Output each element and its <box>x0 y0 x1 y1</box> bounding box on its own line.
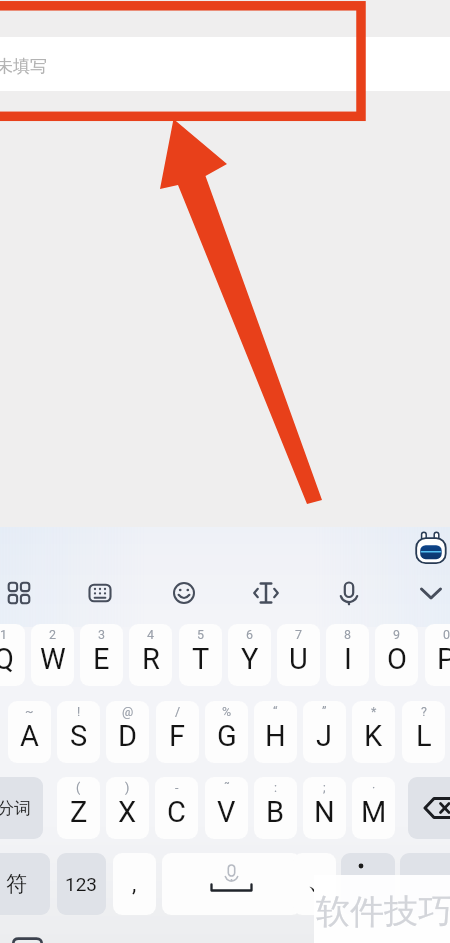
staticText: L <box>416 719 432 753</box>
button[interactable]: 0 <box>425 624 450 686</box>
button[interactable]: Keyboard layout <box>79 572 121 614</box>
button[interactable]: 123 <box>57 853 106 915</box>
button[interactable]: % <box>205 701 248 763</box>
staticText: 2 <box>49 627 57 642</box>
button[interactable]: Voice input <box>328 572 370 614</box>
button[interactable]: 分词 <box>0 777 43 839</box>
button[interactable]: * <box>352 701 395 763</box>
staticText: / <box>175 704 181 719</box>
button[interactable]: 9 <box>375 624 418 686</box>
button[interactable]: 8 <box>326 624 369 686</box>
staticText: 未填写 <box>0 56 47 77</box>
button[interactable]: 未填写 <box>0 37 450 91</box>
button[interactable]: 3 <box>80 624 123 686</box>
button[interactable] <box>162 853 301 915</box>
button[interactable]: Emoji <box>163 572 205 614</box>
staticText: 3 <box>98 627 106 642</box>
button[interactable]: 2 <box>31 624 74 686</box>
button[interactable]: More <box>12 937 43 943</box>
staticText: ~ <box>25 704 34 719</box>
button[interactable]: · <box>352 777 395 839</box>
button[interactable]: ~ <box>8 701 51 763</box>
staticText: ˜ <box>224 780 230 795</box>
staticText: A <box>20 719 39 753</box>
button[interactable]: 5 <box>179 624 222 686</box>
staticText: @ <box>122 704 134 719</box>
staticText: D <box>118 719 138 753</box>
button[interactable]: : <box>254 777 297 839</box>
staticText: O <box>387 642 407 676</box>
staticText: J <box>316 719 333 753</box>
staticText: “ <box>273 704 278 719</box>
staticText: % <box>222 704 232 719</box>
staticText: N <box>314 795 335 829</box>
staticText: ; <box>323 780 326 795</box>
button[interactable]: @ <box>106 701 149 763</box>
staticText: E <box>93 642 110 676</box>
button[interactable]: AI assistant <box>414 530 448 566</box>
staticText: H <box>265 719 286 753</box>
staticText: 软件技巧 <box>316 890 450 933</box>
button[interactable]: 1 <box>0 624 25 686</box>
staticText: 5 <box>197 627 205 642</box>
staticText: F <box>169 719 186 753</box>
button[interactable]: - <box>155 777 198 839</box>
button[interactable]: Apps <box>0 572 40 614</box>
staticText: 9 <box>393 627 401 642</box>
button[interactable]: ! <box>57 701 100 763</box>
staticText: ? <box>421 704 427 719</box>
button[interactable]: / <box>156 701 199 763</box>
staticText: U <box>289 642 308 676</box>
button[interactable]: Hide keyboard <box>410 572 450 614</box>
staticText: K <box>364 719 383 753</box>
button[interactable]: ( <box>57 777 100 839</box>
staticText: ! <box>77 704 81 719</box>
button[interactable]: 6 <box>228 624 271 686</box>
staticText: Q <box>0 642 14 676</box>
staticText: I <box>344 642 352 676</box>
button[interactable]: ) <box>106 777 149 839</box>
button[interactable]: Edit text <box>245 572 287 614</box>
staticText: ) <box>125 780 130 795</box>
button[interactable]: ? <box>402 701 445 763</box>
button[interactable] <box>341 853 395 915</box>
staticText: : <box>274 780 278 795</box>
staticText: 0 <box>443 627 450 642</box>
staticText: R <box>142 642 160 676</box>
staticText: B <box>266 795 285 829</box>
button[interactable]: 、 <box>293 853 336 915</box>
staticText: , <box>132 871 137 897</box>
staticText: C <box>167 795 186 829</box>
staticText: S <box>70 719 88 753</box>
staticText: M <box>361 795 387 829</box>
button[interactable]: “ <box>254 701 297 763</box>
button[interactable]: ˜ <box>205 777 248 839</box>
button[interactable] <box>400 853 450 915</box>
button[interactable]: , <box>113 853 156 915</box>
staticText: 6 <box>246 627 254 642</box>
staticText: X <box>118 795 137 829</box>
staticText: 分词 <box>0 798 31 819</box>
staticText: - <box>175 780 179 795</box>
staticText: W <box>40 642 66 676</box>
staticText: T <box>192 642 210 676</box>
staticText: P <box>437 642 450 676</box>
staticText: ” <box>322 704 327 719</box>
staticText: * <box>371 704 377 719</box>
staticText: ( <box>76 780 81 795</box>
staticText: 8 <box>344 627 352 642</box>
staticText: G <box>217 719 237 753</box>
staticText: 1 <box>0 627 8 642</box>
button[interactable]: 4 <box>129 624 172 686</box>
staticText: 7 <box>295 627 303 642</box>
staticText: 4 <box>147 627 155 642</box>
staticText: 123 <box>65 873 98 895</box>
staticText: Y <box>241 642 259 676</box>
staticText: 、 <box>307 864 333 897</box>
staticText: Z <box>70 795 88 829</box>
button[interactable]: ” <box>303 701 346 763</box>
button[interactable] <box>408 777 450 839</box>
button[interactable]: 符 <box>0 853 50 915</box>
button[interactable]: 7 <box>277 624 320 686</box>
button[interactable]: ; <box>303 777 346 839</box>
